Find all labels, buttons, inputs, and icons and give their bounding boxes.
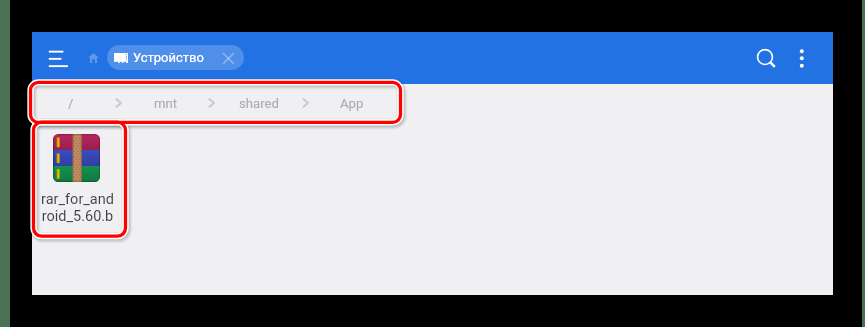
- button[interactable]: App: [340, 88, 364, 118]
- button[interactable]: rar_for_and roid_5.60.b: [36, 130, 118, 225]
- staticText: mnt: [154, 96, 178, 111]
- button[interactable]: Navigation menu: [36, 37, 78, 79]
- staticText: shared: [239, 96, 280, 111]
- button[interactable]: More options: [782, 35, 822, 81]
- other: Close tab: [223, 53, 234, 64]
- button[interactable]: Search: [743, 35, 787, 81]
- staticText: Устройство: [133, 50, 204, 65]
- staticText: /: [68, 96, 74, 111]
- button[interactable]: Устройство: [107, 45, 244, 70]
- button[interactable]: shared: [239, 88, 280, 118]
- button[interactable]: /: [68, 88, 74, 118]
- staticText: App: [340, 96, 364, 111]
- staticText: rar_for_and roid_5.60.b: [41, 191, 114, 225]
- button[interactable]: Home: [78, 43, 110, 73]
- button[interactable]: mnt: [154, 88, 178, 118]
